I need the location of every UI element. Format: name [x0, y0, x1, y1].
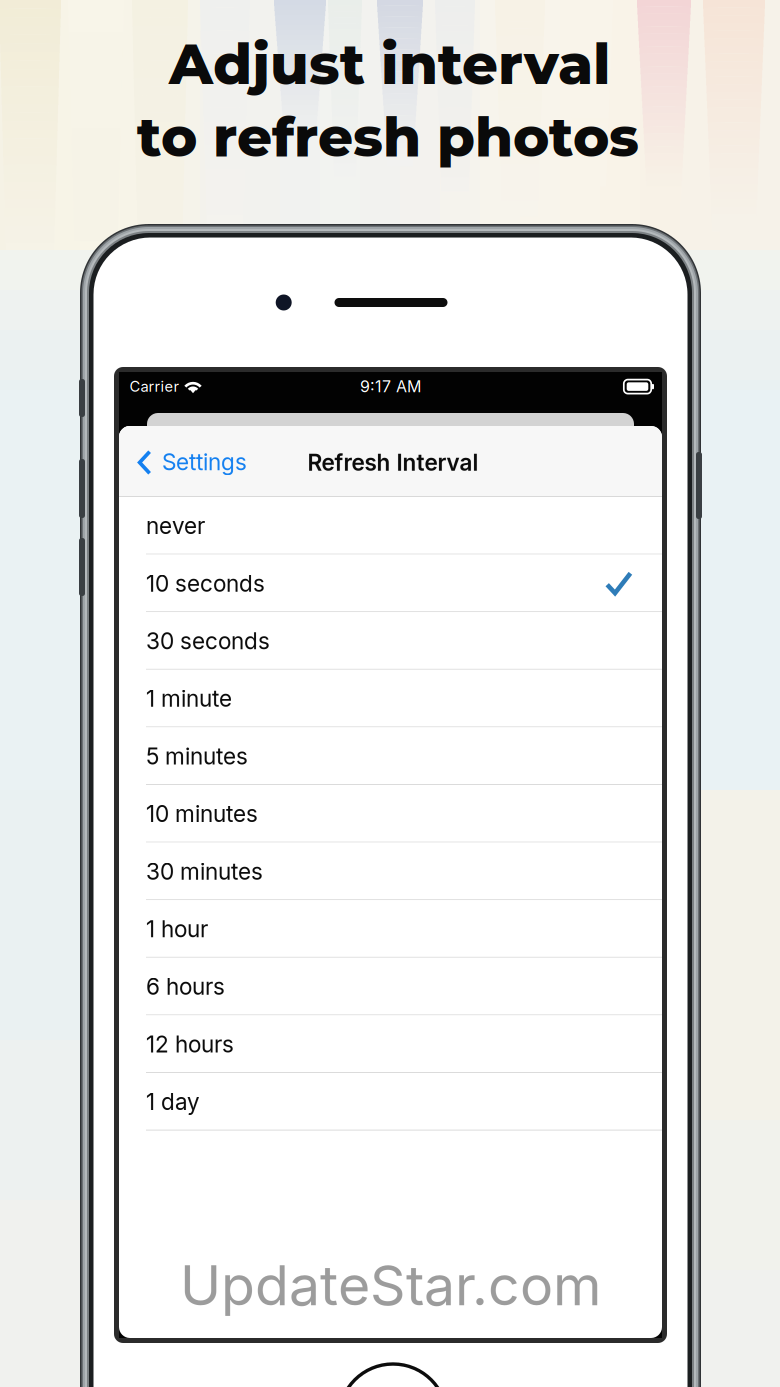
staticText: Carrier: [129, 378, 179, 395]
staticText: Settings: [162, 448, 247, 476]
staticText: 1 day: [146, 1088, 200, 1115]
button[interactable]: Settings: [119, 426, 259, 497]
button[interactable]: 10 seconds: [119, 555, 662, 612]
button[interactable]: 1 minute: [119, 670, 662, 727]
staticText: UpdateStar.com: [180, 1251, 601, 1318]
button[interactable]: 30 minutes: [119, 843, 662, 900]
staticText: 1 hour: [146, 915, 208, 943]
button[interactable]: 6 hours: [119, 958, 662, 1015]
button[interactable]: 5 minutes: [119, 727, 662, 785]
staticText: 9:17 AM: [360, 377, 421, 396]
staticText: 30 minutes: [146, 858, 263, 885]
staticText: Adjust interval: [169, 30, 611, 98]
button[interactable]: 12 hours: [119, 1015, 662, 1073]
staticText: 5 minutes: [146, 742, 248, 770]
staticText: 6 hours: [146, 973, 225, 1000]
button[interactable]: 10 minutes: [119, 785, 662, 843]
staticText: 12 hours: [146, 1030, 234, 1058]
staticText: to refresh photos: [137, 104, 639, 170]
staticText: 10 seconds: [146, 570, 265, 597]
staticText: Refresh Interval: [307, 449, 478, 476]
button[interactable]: 1 hour: [119, 900, 662, 958]
button[interactable]: 1 day: [119, 1073, 662, 1131]
staticText: never: [146, 512, 205, 539]
staticText: 10 minutes: [146, 800, 258, 827]
staticText: 1 minute: [146, 685, 232, 712]
staticText: 30 seconds: [146, 627, 270, 655]
button[interactable]: never: [119, 497, 662, 555]
button[interactable]: 30 seconds: [119, 612, 662, 670]
